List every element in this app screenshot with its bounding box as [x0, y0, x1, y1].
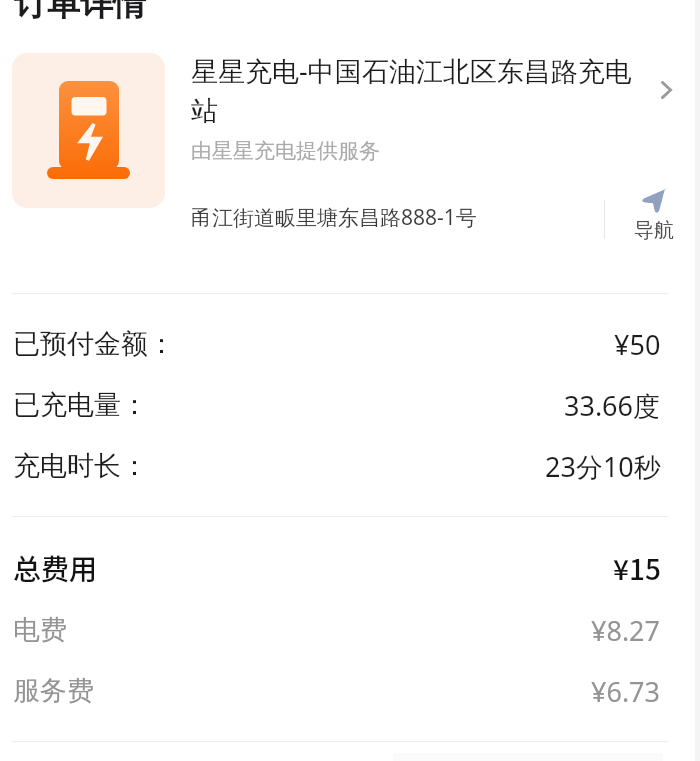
staticText: 电费 [13, 613, 67, 647]
staticText: 订单详情 [14, 0, 146, 25]
staticText: 已充电量： [13, 388, 148, 422]
button[interactable]: 导航 [619, 188, 689, 243]
staticText: 充电时长： [13, 449, 148, 483]
staticText: ¥8.27 [591, 612, 661, 649]
staticText: 由星星充电提供服务 [191, 138, 380, 164]
staticText: 导航 [634, 218, 674, 243]
staticText: ¥6.73 [591, 673, 661, 710]
staticText: ¥50 [614, 326, 661, 363]
staticText: 服务费 [13, 674, 94, 708]
staticText: ¥15 [613, 548, 661, 589]
staticText: 总费用 [13, 548, 98, 589]
staticText: 甬江街道畈里塘东昌路888-1号 [191, 203, 477, 232]
staticText: 已预付金额： [13, 327, 175, 361]
button[interactable]: 查看充电站详情 [648, 68, 684, 112]
staticText: 星星充电-中国石油江北区东昌路充电站 [191, 52, 638, 128]
staticText: 33.66度 [564, 387, 661, 424]
staticText: 23分10秒 [545, 448, 661, 485]
